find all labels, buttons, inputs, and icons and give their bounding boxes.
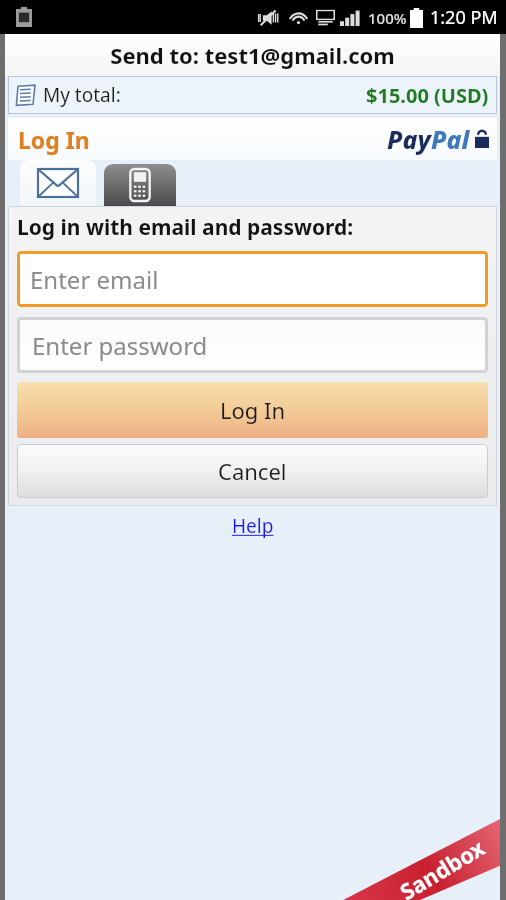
button[interactable]: Log in with email (20, 160, 96, 206)
button[interactable]: Log in with phone (104, 164, 176, 206)
staticText: 100% (368, 8, 407, 28)
staticText: Enter email (30, 263, 159, 296)
other: Log in with phone (129, 169, 151, 201)
staticText: Sandbox (394, 832, 490, 900)
staticText: Pal (431, 122, 470, 156)
staticText: $15.00 (USD) (366, 82, 489, 109)
staticText: 1:20 PM (430, 5, 498, 30)
button[interactable]: Log In (17, 382, 488, 438)
staticText: Help (232, 513, 274, 539)
staticText: Send to: test1@gmail.com (110, 40, 395, 70)
staticText: Log In (18, 124, 90, 155)
other: Log in with email (38, 169, 78, 197)
button[interactable]: Enter password (20, 320, 485, 370)
staticText: Log in with email and password: (17, 213, 354, 242)
button[interactable]: Enter email (17, 251, 488, 307)
button[interactable]: Help (226, 509, 280, 543)
button[interactable]: Cancel (17, 444, 488, 498)
staticText: Log In (220, 395, 286, 425)
staticText: Cancel (218, 456, 287, 486)
staticText: My total: (43, 82, 121, 108)
staticText: Pay (387, 122, 431, 156)
staticText: Enter password (32, 329, 208, 362)
